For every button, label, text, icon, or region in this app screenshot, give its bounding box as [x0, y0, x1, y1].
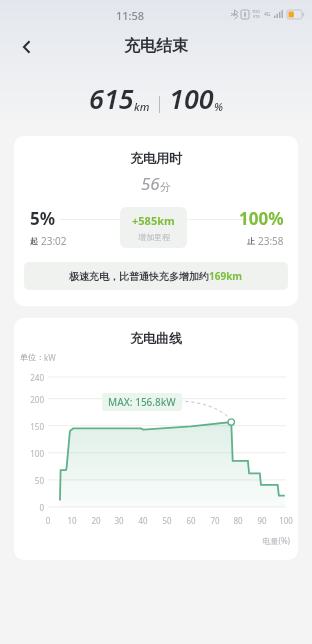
staticText: 4G — [264, 11, 271, 18]
staticText: 23:02 — [41, 234, 67, 248]
staticText: 充电曲线 — [14, 330, 298, 346]
staticText: 100% — [239, 207, 284, 230]
staticText: 极速充电，比普通快充多增加约 — [69, 270, 209, 283]
staticText: 20 — [88, 515, 104, 526]
staticText: 40 — [135, 515, 151, 526]
staticText: 充电用时 — [130, 150, 182, 166]
staticText: TDD — [252, 9, 261, 14]
staticText: 56 — [141, 172, 160, 195]
staticText: 23:58 — [258, 234, 284, 248]
staticText: 80 — [230, 515, 246, 526]
staticText: 100 — [169, 80, 214, 117]
button[interactable]: Back — [10, 30, 44, 64]
staticText: 充电结束 — [124, 36, 188, 56]
staticText: 0 — [40, 515, 56, 526]
staticText: 169km — [209, 269, 243, 283]
staticText: 起 — [30, 236, 38, 246]
staticText: 50 — [159, 515, 175, 526]
staticText: 10 — [64, 515, 80, 526]
staticText: 100 — [16, 448, 44, 459]
staticText: 0 — [16, 502, 44, 513]
staticText: 30 — [111, 515, 127, 526]
staticText: 615 — [89, 80, 134, 117]
staticText: 单位： — [20, 352, 44, 362]
staticText: % — [214, 99, 223, 114]
staticText: 电量(%) — [14, 535, 290, 546]
button[interactable]: 极速充电，比普通快充多增加约 — [24, 262, 288, 290]
staticText: +585km — [132, 213, 175, 228]
staticText: MAX: 156.8kW — [108, 395, 176, 409]
staticText: VTE — [253, 14, 260, 19]
staticText: 止 — [247, 236, 255, 246]
button[interactable]: 充电用时 — [14, 136, 298, 306]
staticText: 50 — [16, 475, 44, 486]
staticText: 200 — [16, 394, 44, 405]
staticText: 100 — [278, 515, 294, 526]
staticText: kW — [44, 352, 56, 363]
staticText: 70 — [207, 515, 223, 526]
staticText: 150 — [16, 421, 44, 432]
staticText: 增加里程 — [138, 232, 170, 242]
staticText: km — [134, 99, 150, 114]
button[interactable]: 充电曲线 — [14, 318, 298, 560]
staticText: 5% — [30, 207, 56, 230]
staticText: 240 — [16, 372, 44, 383]
staticText: 60 — [183, 515, 199, 526]
staticText: 90 — [254, 515, 270, 526]
staticText: 分 — [160, 180, 171, 194]
staticText: 11:58 — [116, 8, 145, 23]
